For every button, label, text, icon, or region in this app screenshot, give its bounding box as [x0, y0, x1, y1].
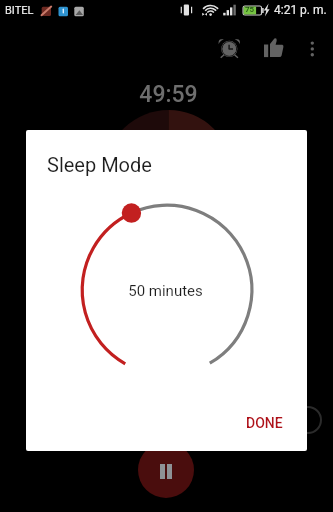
button[interactable]: DONE — [238, 409, 291, 437]
button[interactable]: Like — [258, 32, 287, 61]
staticText: DONE — [246, 415, 283, 431]
staticText: 4:21 p. m. — [274, 3, 327, 17]
staticText: 75 — [245, 5, 255, 14]
staticText: 50 minutes — [26, 282, 306, 300]
button[interactable]: Pause — [138, 442, 194, 498]
button[interactable]: Set alarm — [215, 34, 244, 63]
staticText: BITEL — [5, 4, 34, 17]
staticText: Sleep Mode — [47, 153, 152, 176]
button[interactable]: More options — [299, 34, 328, 63]
button[interactable]: Sleep timer duration dial — [71, 194, 262, 385]
staticText: 49:59 — [2, 81, 333, 108]
